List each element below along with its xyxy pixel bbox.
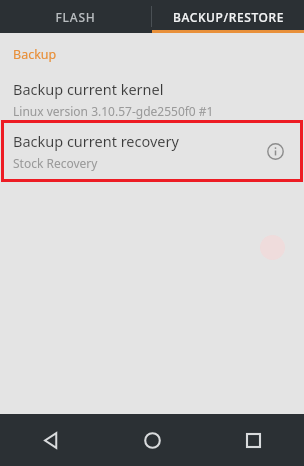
- staticText: Backup current kernel: [13, 79, 164, 99]
- staticText: Backup current recovery: [13, 131, 179, 151]
- button[interactable]: Back: [0, 414, 102, 466]
- button[interactable]: Info: [261, 137, 289, 165]
- button[interactable]: Home: [102, 414, 203, 466]
- staticText: Stock Recovery: [13, 155, 98, 171]
- button[interactable]: Backup current kernel: [0, 63, 304, 120]
- staticText: BACKUP/RESTORE: [173, 9, 284, 25]
- staticText: FLASH: [55, 9, 96, 25]
- button[interactable]: Add: [260, 235, 285, 260]
- button[interactable]: BACKUP/RESTORE: [152, 0, 304, 33]
- button[interactable]: Recent apps: [203, 414, 304, 466]
- button[interactable]: Backup current recovery: [1, 120, 303, 182]
- staticText: Linux version 3.10.57-gde2550f0 #1: [13, 103, 214, 119]
- staticText: Backup: [13, 46, 57, 63]
- button[interactable]: FLASH: [0, 0, 151, 33]
